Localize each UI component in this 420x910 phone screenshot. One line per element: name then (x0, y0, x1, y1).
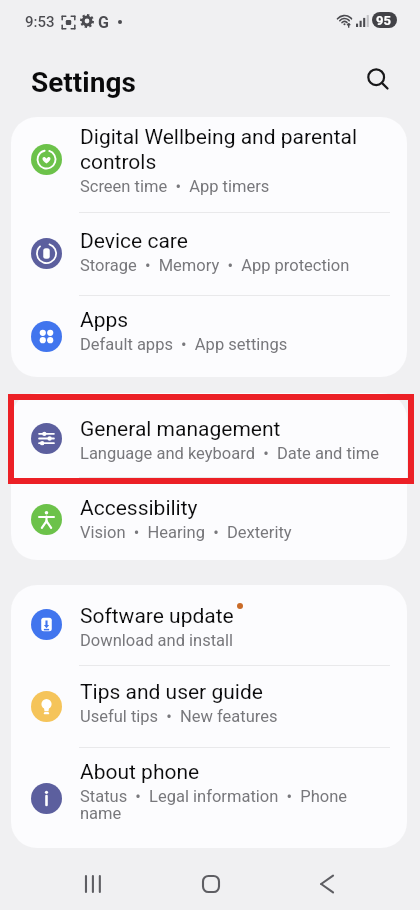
staticText: Device care (80, 228, 188, 253)
button[interactable]: Digital Wellbeing and parental controls (11, 117, 407, 212)
button[interactable]: Search (356, 57, 401, 102)
button[interactable]: Apps (11, 295, 407, 377)
staticText: Digital Wellbeing and parental controls (80, 124, 380, 174)
staticText: Settings (31, 66, 136, 99)
button[interactable]: Back (294, 850, 362, 910)
staticText: G (98, 13, 109, 32)
staticText: Accessibility (80, 495, 198, 520)
button[interactable]: Tips and user guide (11, 665, 407, 747)
staticText: About phone (80, 759, 200, 784)
staticText: Vision • Hearing • Dexterity (80, 523, 292, 542)
staticText: Download and install (80, 631, 234, 650)
staticText: Screen time • App timers (80, 177, 270, 196)
button[interactable]: Home (177, 850, 245, 910)
staticText: Software update (80, 603, 234, 628)
staticText: Language and keyboard • Date and time (80, 444, 380, 463)
staticText: 9:53 (25, 13, 55, 31)
staticText: Default apps • App settings (80, 335, 288, 354)
button[interactable]: About phone (11, 747, 407, 848)
staticText: 95 (376, 13, 391, 28)
button[interactable]: Accessibility (11, 477, 407, 560)
staticText: Storage • Memory • App protection (80, 256, 350, 275)
button[interactable]: Software update (11, 585, 407, 665)
staticText: Tips and user guide (80, 679, 263, 704)
button[interactable]: Recents (59, 850, 127, 910)
staticText: Apps (80, 307, 129, 332)
staticText: Status • Legal information • Phone name (80, 787, 354, 823)
button[interactable]: Device care (11, 212, 407, 295)
staticText: General management (80, 416, 281, 441)
staticText: Useful tips • New features (80, 707, 278, 726)
button[interactable]: General management (11, 393, 407, 477)
